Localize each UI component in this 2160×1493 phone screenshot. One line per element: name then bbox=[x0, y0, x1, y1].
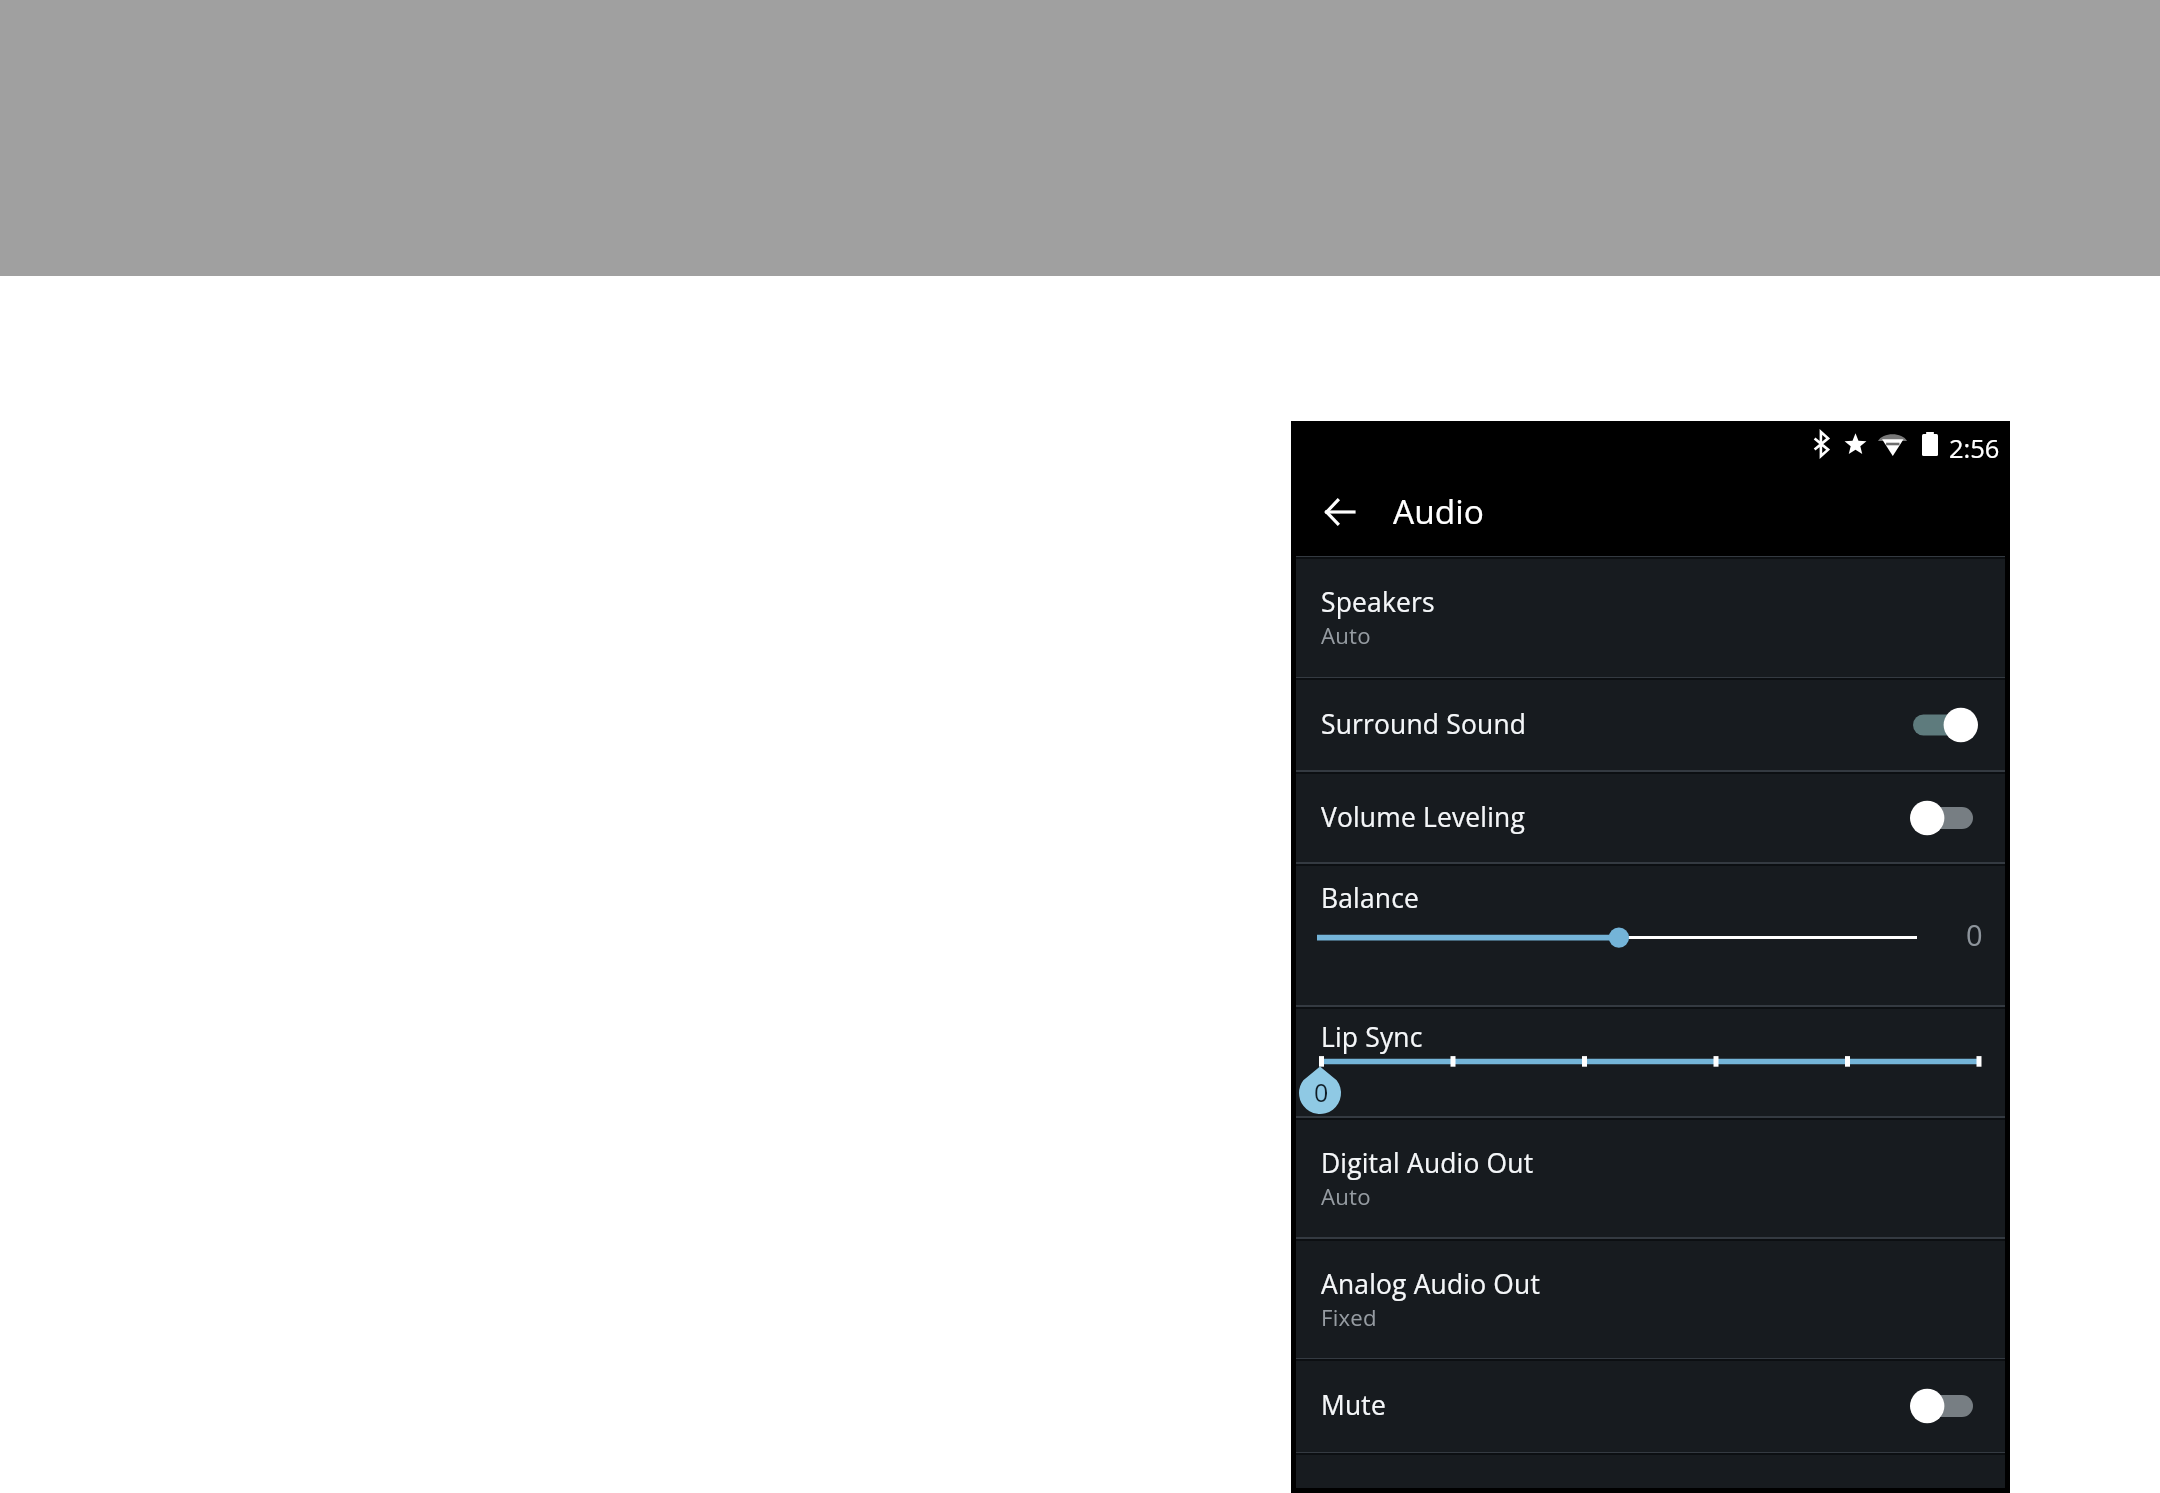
staticText: Balance bbox=[1321, 880, 1420, 916]
staticText: Mute bbox=[1321, 1387, 1386, 1423]
button[interactable]: Mute bbox=[1296, 1359, 2005, 1453]
button[interactable]: Digital Audio Out bbox=[1296, 1117, 2005, 1238]
button[interactable]: Volume Leveling bbox=[1296, 772, 2005, 864]
staticText: Lip Sync bbox=[1321, 1019, 1423, 1055]
staticText: Fixed bbox=[1321, 1302, 1377, 1332]
staticText: Analog Audio Out bbox=[1321, 1266, 1540, 1302]
button[interactable]: Back bbox=[1311, 484, 1367, 540]
staticText: Volume Leveling bbox=[1321, 799, 1525, 835]
staticText: 0 bbox=[1966, 915, 1983, 954]
staticText: Auto bbox=[1321, 620, 1371, 650]
staticText: 0 bbox=[1314, 1075, 1329, 1109]
staticText: Speakers bbox=[1321, 584, 1435, 620]
button[interactable]: Surround Sound bbox=[1296, 678, 2005, 772]
button[interactable]: Balance bbox=[1296, 864, 2005, 1007]
staticText: 2:56 bbox=[1949, 431, 2000, 466]
button[interactable]: Lip Sync bbox=[1296, 1006, 2005, 1117]
staticText: Auto bbox=[1321, 1181, 1371, 1211]
staticText: Digital Audio Out bbox=[1321, 1145, 1534, 1181]
staticText: Surround Sound bbox=[1321, 706, 1527, 742]
staticText: Audio bbox=[1393, 488, 1484, 534]
button[interactable]: Analog Audio Out bbox=[1296, 1239, 2005, 1360]
button[interactable]: Speakers bbox=[1296, 557, 2005, 678]
